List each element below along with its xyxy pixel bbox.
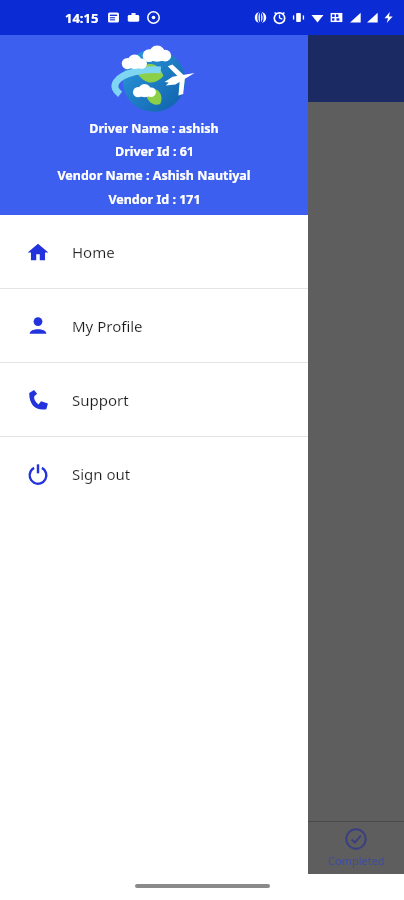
staticText: Support: [72, 390, 129, 410]
button[interactable]: Completed: [308, 822, 404, 874]
button[interactable]: Support: [0, 363, 308, 436]
staticText: Sign out: [72, 464, 131, 484]
staticText: Vendor Id : 171: [108, 191, 201, 208]
staticText: Driver Id : 61: [115, 143, 194, 160]
staticText: My Profile: [72, 316, 143, 336]
staticText: Completed: [328, 853, 385, 868]
button[interactable]: Home: [0, 215, 308, 288]
button[interactable]: Sign out: [0, 437, 308, 510]
staticText: 14:15: [65, 9, 99, 27]
staticText: Vendor Name : Ashish Nautiyal: [57, 167, 251, 184]
staticText: Driver Name : ashish: [89, 120, 219, 137]
staticText: Home: [72, 242, 115, 262]
button[interactable]: My Profile: [0, 289, 308, 362]
